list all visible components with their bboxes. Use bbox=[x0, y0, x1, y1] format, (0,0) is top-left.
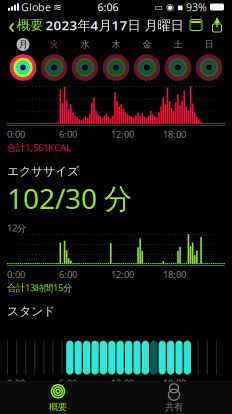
staticText: 日 bbox=[204, 39, 213, 50]
staticText: 0:00 bbox=[7, 128, 25, 140]
staticText: 6:00 bbox=[59, 377, 77, 389]
staticText: 18:00 bbox=[163, 128, 186, 140]
staticText: 6:00 bbox=[59, 128, 77, 140]
staticText: 6:06 bbox=[97, 0, 118, 14]
staticText: 概要 bbox=[49, 401, 67, 413]
staticText: ≋ bbox=[53, 1, 62, 13]
staticText: スタンドしなかった時間: 1時間 bbox=[7, 390, 143, 402]
button[interactable]: 概要 bbox=[0, 380, 116, 414]
staticText: ◉ bbox=[166, 2, 174, 12]
staticText: ▪ bbox=[177, 2, 183, 12]
staticText: ▲ bbox=[214, 15, 220, 24]
staticText: 18:00 bbox=[163, 268, 186, 280]
staticText: Globe bbox=[21, 0, 51, 14]
button[interactable]: 火 bbox=[38, 38, 69, 81]
button[interactable]: 共有 bbox=[206, 16, 228, 34]
staticText: 0:00 bbox=[7, 268, 25, 280]
staticText: 木 bbox=[111, 39, 120, 50]
button[interactable]: 月 bbox=[7, 38, 38, 81]
button[interactable]: ‹ bbox=[0, 7, 43, 43]
staticText: 2023年4月17日 月曜日 bbox=[45, 16, 183, 34]
staticText: ▭ bbox=[154, 2, 163, 12]
staticText: 6:00 bbox=[59, 268, 77, 280]
staticText: 0:00 bbox=[7, 377, 25, 389]
staticText: 火 bbox=[49, 39, 58, 50]
staticText: 合計1,561KCAL bbox=[7, 141, 71, 154]
staticText: 12:00 bbox=[111, 268, 134, 280]
staticText: 18:00 bbox=[163, 377, 186, 389]
staticText: ‹ bbox=[8, 11, 15, 39]
button[interactable]: 共有 bbox=[116, 380, 232, 414]
button[interactable]: 金 bbox=[131, 38, 162, 81]
staticText: 102/30 分 bbox=[7, 179, 132, 217]
staticText: 土 bbox=[173, 39, 182, 50]
staticText: スタンド bbox=[7, 304, 55, 319]
staticText: 12:00 bbox=[111, 377, 134, 389]
staticText: 12分 bbox=[7, 222, 26, 234]
button[interactable]: 日 bbox=[193, 38, 224, 81]
button[interactable]: 木 bbox=[100, 38, 131, 81]
staticText: 月 bbox=[18, 39, 27, 50]
staticText: エクササイズ bbox=[7, 164, 79, 178]
staticText: 12:00 bbox=[111, 128, 134, 140]
staticText: 水 bbox=[80, 39, 89, 50]
staticText: 概要 bbox=[17, 17, 43, 33]
staticText: 合計13時間15分 bbox=[7, 281, 72, 294]
button[interactable]: カレンダー bbox=[186, 16, 206, 34]
button[interactable]: 水 bbox=[69, 38, 100, 81]
staticText: 93% bbox=[186, 0, 207, 14]
button[interactable]: 土 bbox=[162, 38, 193, 81]
staticText: 共有 bbox=[165, 401, 183, 413]
staticText: 金 bbox=[142, 39, 151, 50]
